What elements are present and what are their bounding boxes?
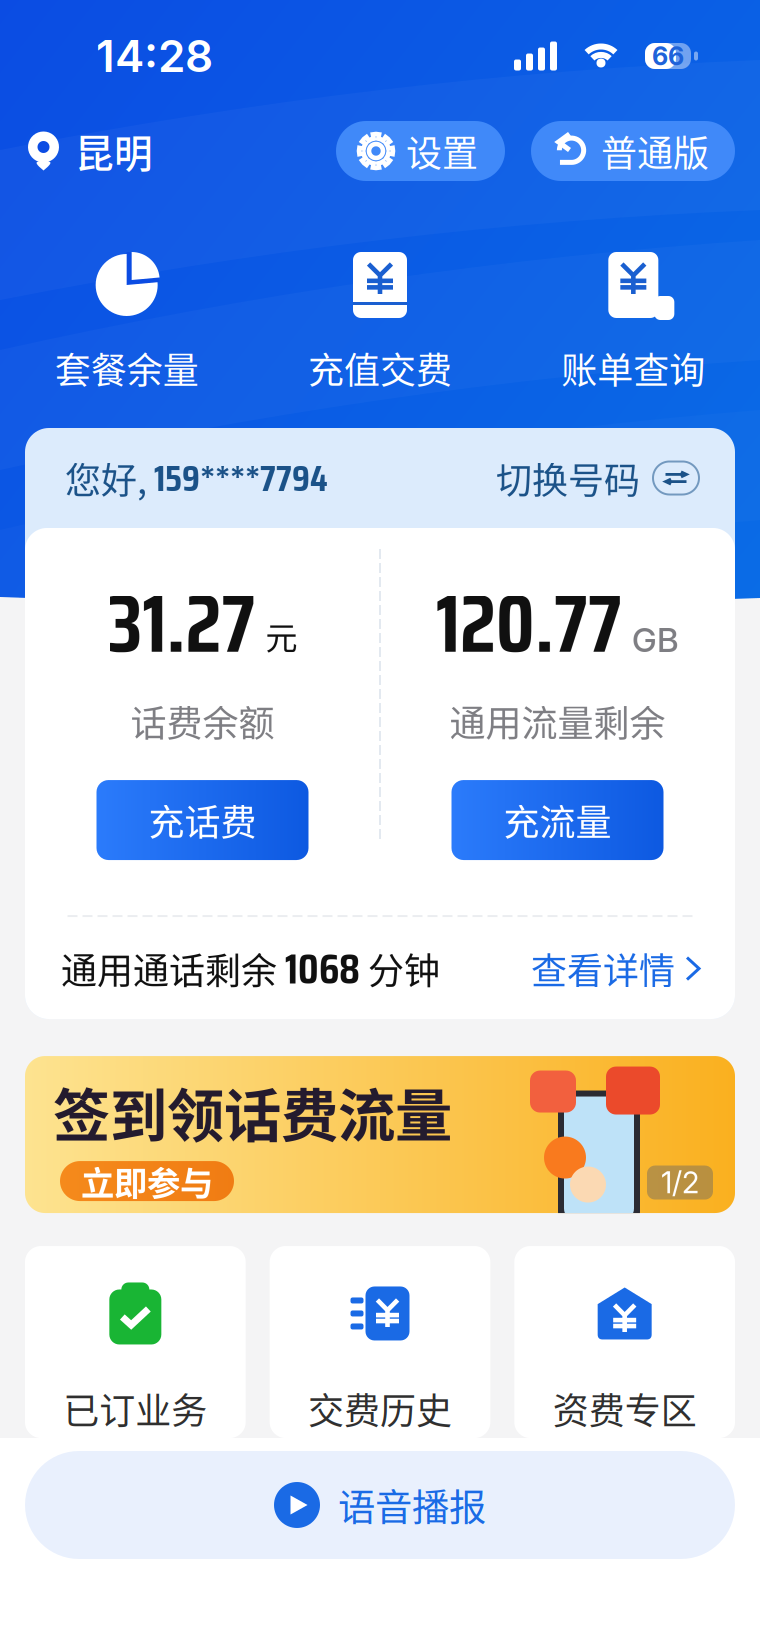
button[interactable]: 充话费 bbox=[96, 780, 308, 860]
staticText: 分钟 bbox=[368, 942, 440, 995]
staticText: 已订业务 bbox=[63, 1382, 207, 1435]
staticText: 159****7794 bbox=[147, 449, 328, 507]
staticText: GB bbox=[632, 620, 679, 660]
staticText: 套餐余量 bbox=[55, 342, 199, 394]
button[interactable]: 充值交费 bbox=[253, 250, 507, 394]
staticText: 元 bbox=[265, 613, 297, 659]
staticText: 签到领话费流量 bbox=[53, 1070, 452, 1153]
button[interactable]: 账单查询 bbox=[507, 250, 760, 394]
staticText: 充流量 bbox=[503, 794, 611, 846]
button[interactable]: 已订业务 bbox=[25, 1246, 246, 1438]
button[interactable]: 切换号码 bbox=[496, 452, 699, 504]
staticText: 查看详情 bbox=[531, 942, 675, 995]
button[interactable]: 充流量 bbox=[451, 780, 663, 860]
staticText: 话费余额 bbox=[130, 695, 274, 747]
button[interactable]: 语音播报 bbox=[0, 1451, 760, 1559]
staticText: 普通版 bbox=[601, 125, 709, 177]
staticText: 1068 bbox=[277, 935, 368, 1002]
staticText: 通用流量剩余 bbox=[449, 695, 665, 747]
staticText: 14:28 bbox=[96, 29, 213, 83]
staticText: 设置 bbox=[406, 125, 478, 177]
button[interactable]: 资费专区 bbox=[514, 1246, 735, 1438]
button[interactable]: 交费历史 bbox=[270, 1246, 490, 1438]
button[interactable]: 签到领话费流量 bbox=[0, 1056, 760, 1213]
staticText: 昆明 bbox=[75, 123, 153, 179]
staticText: 语音播报 bbox=[338, 1478, 486, 1532]
button[interactable]: 昆明 bbox=[28, 115, 153, 187]
staticText: 立即参与 bbox=[81, 1157, 213, 1205]
staticText: 充话费 bbox=[148, 794, 256, 846]
staticText: 切换号码 bbox=[496, 452, 640, 504]
staticText: 交费历史 bbox=[308, 1382, 452, 1435]
staticText: 资费专区 bbox=[553, 1382, 697, 1435]
staticText: 充值交费 bbox=[308, 342, 452, 394]
button[interactable]: 套餐余量 bbox=[0, 250, 253, 394]
staticText: 120.77 bbox=[436, 561, 622, 687]
button[interactable]: 设置 bbox=[336, 121, 505, 181]
staticText: 您好, bbox=[65, 452, 147, 504]
staticText: 66 bbox=[652, 41, 684, 71]
staticText: 31.27 bbox=[107, 561, 255, 687]
staticText: 通用通话剩余 bbox=[61, 942, 277, 995]
button[interactable]: 通用通话剩余 bbox=[25, 918, 735, 1019]
staticText: 账单查询 bbox=[561, 342, 705, 394]
button[interactable]: 普通版 bbox=[531, 121, 735, 181]
staticText: 1/2 bbox=[661, 1165, 699, 1200]
